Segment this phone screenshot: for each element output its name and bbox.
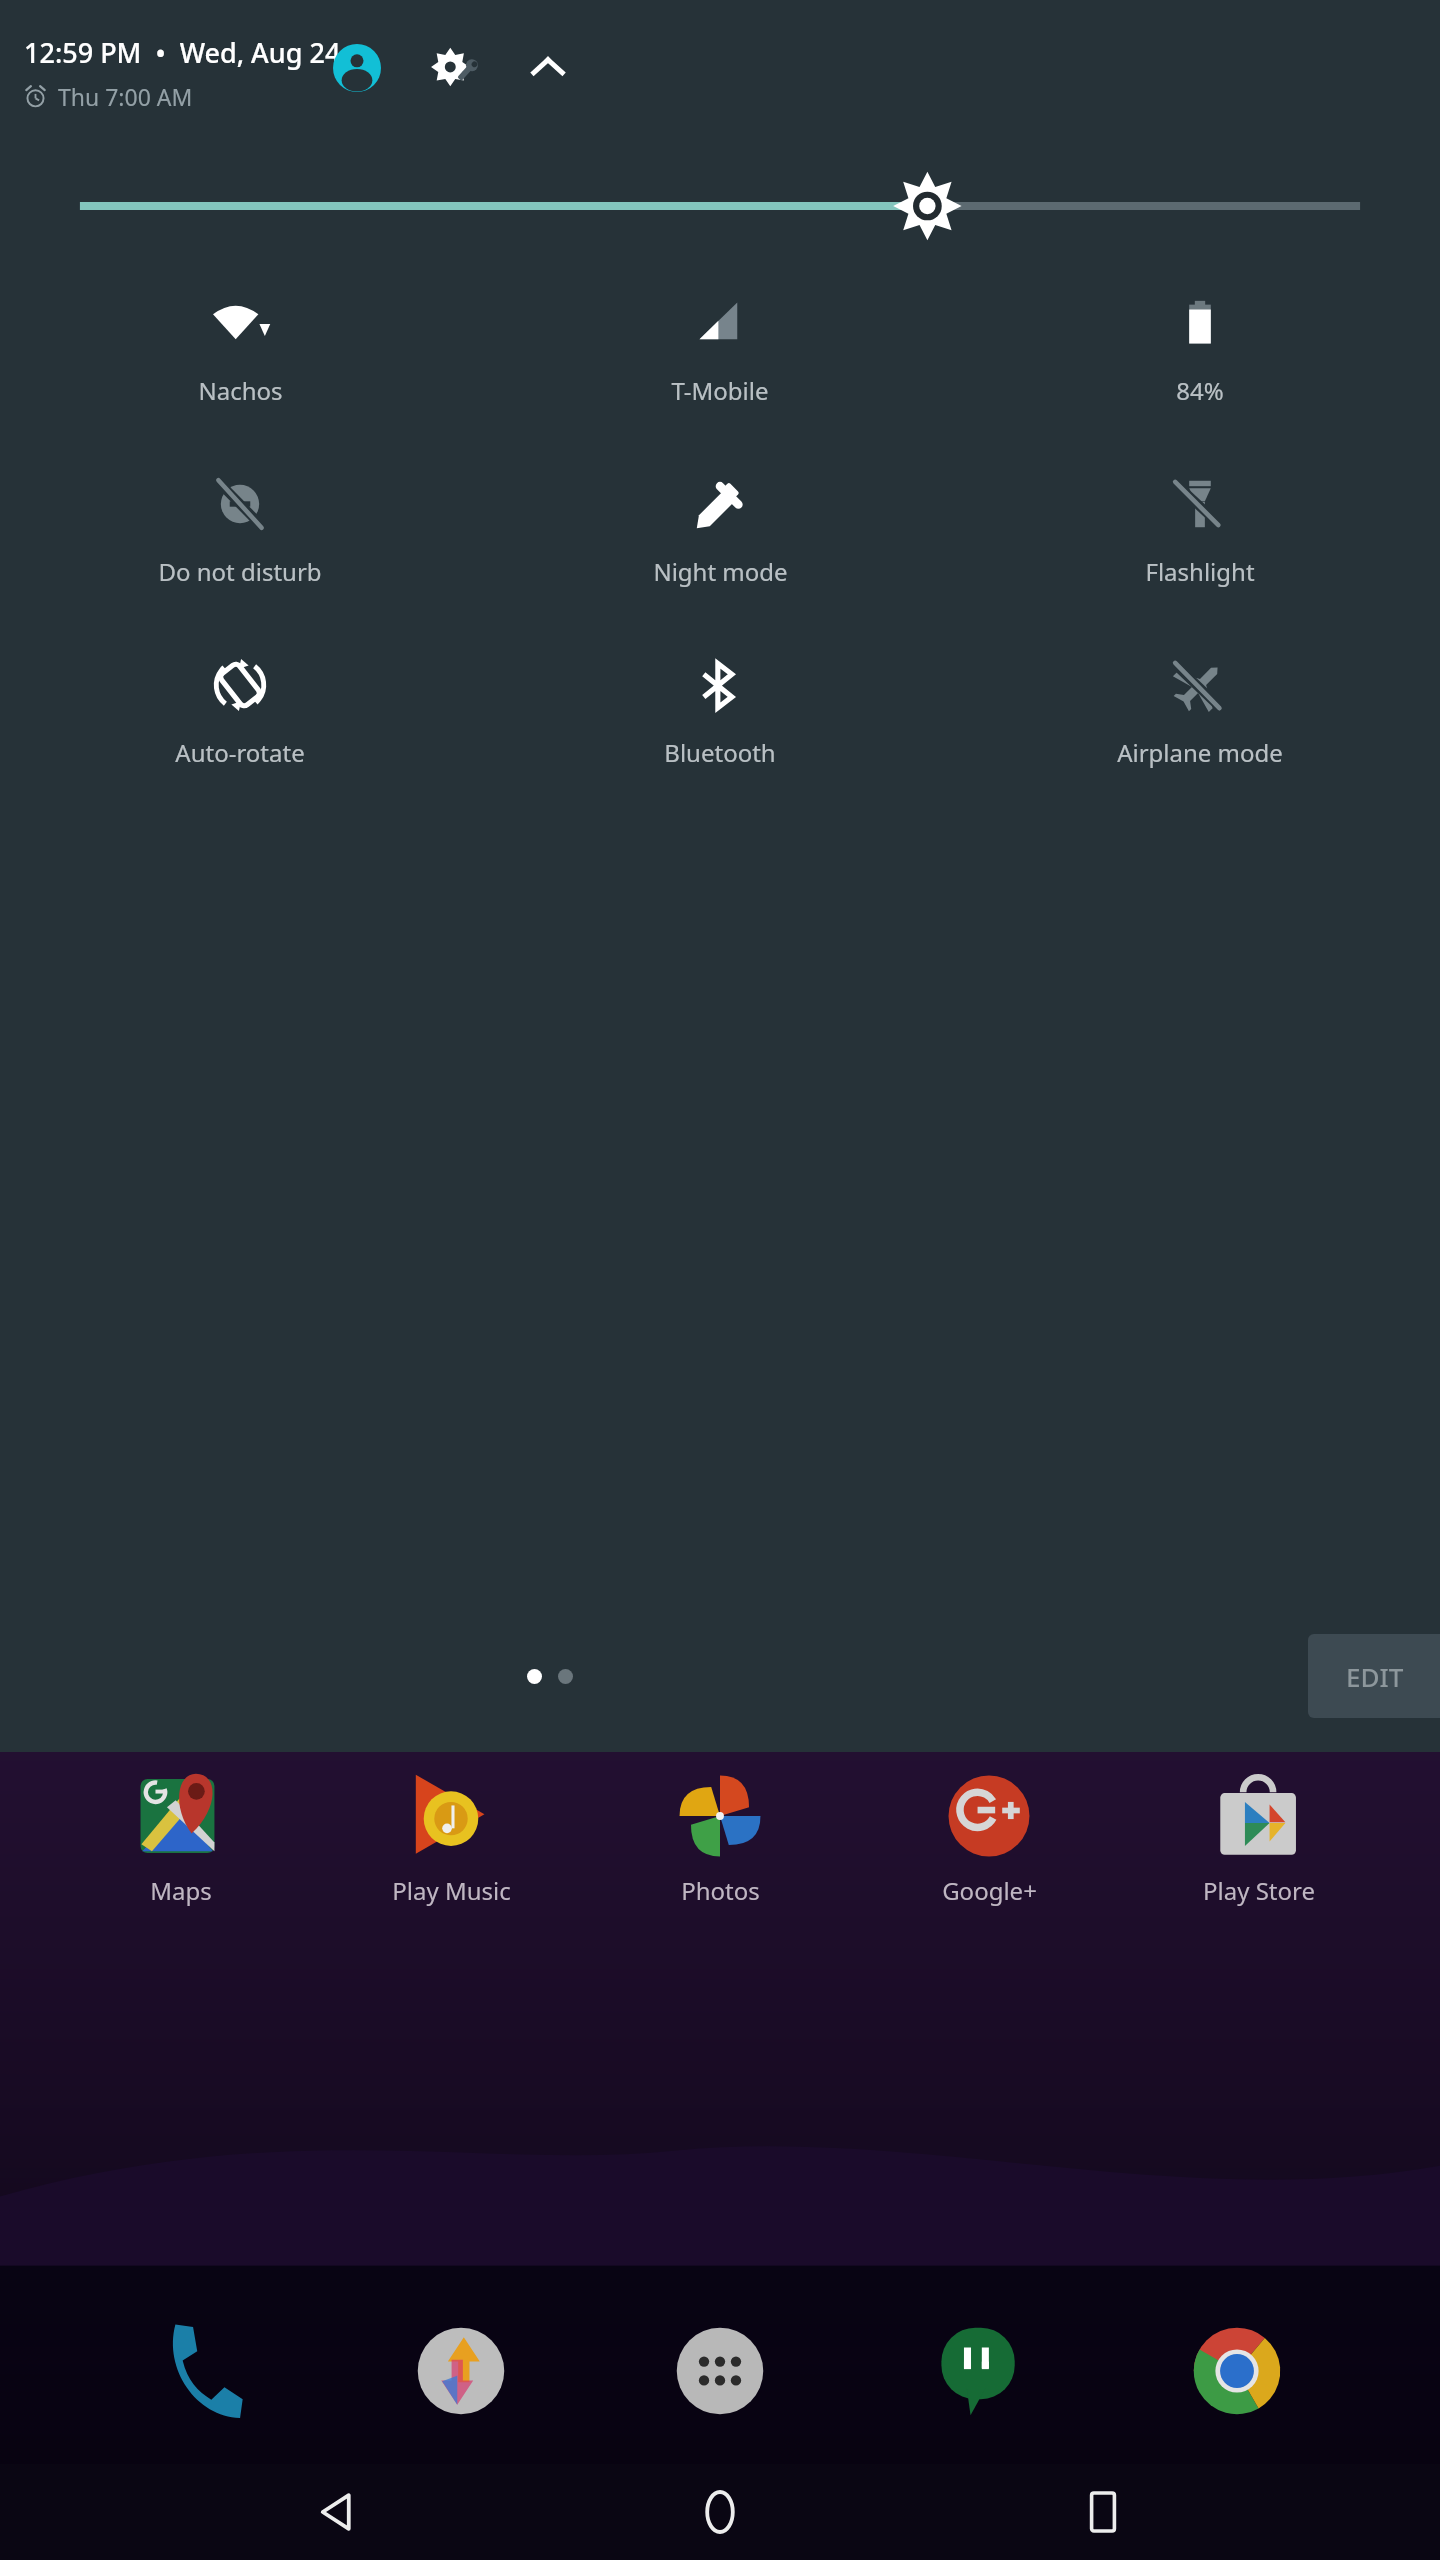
- staticText: Bluetooth: [664, 736, 776, 769]
- button[interactable]: Do not disturb: [0, 477, 480, 588]
- button[interactable]: Play Music: [363, 1772, 539, 1907]
- staticText: EDIT: [1346, 1659, 1404, 1694]
- button[interactable]: Brightness: [0, 168, 1440, 244]
- staticText: Thu 7:00 AM: [58, 81, 193, 112]
- staticText: Night mode: [653, 555, 788, 588]
- button[interactable]: Night mode: [480, 477, 960, 588]
- button[interactable]: Back: [291, 2466, 383, 2558]
- button[interactable]: Airplane mode: [960, 658, 1440, 769]
- button[interactable]: Hangouts: [923, 2315, 1035, 2427]
- button[interactable]: 84%: [960, 296, 1440, 407]
- staticText: 12:59 PM • Wed, Aug 24: [24, 34, 341, 71]
- button[interactable]: Bluetooth: [480, 658, 960, 769]
- staticText: Google+: [942, 1874, 1037, 1907]
- button[interactable]: EDIT: [1308, 1634, 1440, 1718]
- button[interactable]: Phone: [147, 2315, 259, 2427]
- staticText: Play Music: [392, 1874, 511, 1907]
- button[interactable]: Maps: [93, 1772, 269, 1907]
- button[interactable]: Chrome: [1181, 2315, 1293, 2427]
- staticText: Flashlight: [1145, 555, 1255, 588]
- staticText: T-Mobile: [671, 374, 769, 407]
- button[interactable]: Home: [674, 2466, 766, 2558]
- button[interactable]: T-Mobile: [480, 296, 960, 407]
- button[interactable]: User account: [330, 41, 384, 95]
- staticText: Photos: [681, 1874, 760, 1907]
- staticText: Airplane mode: [1117, 736, 1283, 769]
- staticText: 84%: [1176, 374, 1224, 407]
- staticText: Nachos: [198, 374, 283, 407]
- staticText: Play Store: [1203, 1874, 1315, 1907]
- button[interactable]: Messenger: [405, 2315, 517, 2427]
- button[interactable]: Recent apps: [1057, 2466, 1149, 2558]
- button[interactable]: All apps: [664, 2315, 776, 2427]
- button[interactable]: Play Store: [1171, 1772, 1347, 1907]
- staticText: Auto-rotate: [175, 736, 305, 769]
- staticText: Maps: [150, 1874, 212, 1907]
- button[interactable]: Settings: [428, 40, 484, 96]
- button[interactable]: Nachos: [0, 296, 480, 407]
- button[interactable]: Auto-rotate: [0, 658, 480, 769]
- button[interactable]: Flashlight: [960, 477, 1440, 588]
- button[interactable]: Google+: [901, 1772, 1077, 1907]
- staticText: Do not disturb: [158, 555, 322, 588]
- button[interactable]: Photos: [632, 1772, 808, 1907]
- button[interactable]: Collapse: [522, 42, 574, 94]
